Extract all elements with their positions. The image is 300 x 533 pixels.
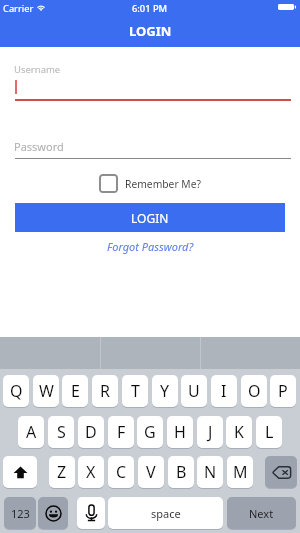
button[interactable]: I (211, 375, 237, 407)
staticText: W (39, 380, 54, 402)
staticText: 6:01 PM (132, 2, 168, 15)
staticText: Remember Me? (125, 177, 201, 191)
button[interactable]: O (241, 375, 267, 407)
staticText: Password (14, 139, 64, 154)
staticText: K (234, 421, 244, 443)
button[interactable]: M (227, 456, 253, 488)
staticText: Username (14, 63, 61, 76)
staticText: M (233, 461, 248, 483)
staticText: Q (10, 380, 23, 402)
staticText: LOGIN (129, 22, 172, 40)
staticText: H (174, 421, 186, 443)
staticText: U (188, 380, 200, 402)
button[interactable]: A (18, 416, 44, 448)
button[interactable]: Forgot Password? (107, 239, 194, 254)
staticText: X (86, 461, 96, 483)
button[interactable]: W (33, 375, 59, 407)
staticText: Carrier (3, 2, 34, 15)
button[interactable]: H (167, 416, 193, 448)
button[interactable]: Dictation (77, 497, 105, 529)
button[interactable]: S (48, 416, 74, 448)
button[interactable]: E (62, 375, 88, 407)
button[interactable]: Z (49, 456, 75, 488)
staticText: E (71, 380, 80, 402)
staticText: R (100, 380, 110, 402)
staticText: F (117, 421, 126, 443)
button[interactable]: T (122, 375, 148, 407)
button[interactable]: V (138, 456, 164, 488)
button[interactable]: Remember Me? (99, 174, 201, 193)
staticText: 123 (11, 506, 30, 521)
staticText: J (208, 421, 213, 443)
staticText: D (85, 421, 97, 443)
button[interactable]: Emoji (38, 497, 68, 529)
staticText: C (116, 461, 127, 483)
staticText: P (278, 380, 288, 402)
staticText: N (204, 461, 217, 483)
button[interactable]: R (92, 375, 118, 407)
staticText: S (57, 421, 66, 443)
button[interactable]: J (197, 416, 223, 448)
button[interactable]: N (197, 456, 223, 488)
staticText: space (151, 506, 181, 521)
button[interactable]: G (137, 416, 163, 448)
button[interactable]: Next (227, 497, 296, 529)
button[interactable]: X (78, 456, 104, 488)
staticText: Next (249, 506, 274, 521)
button[interactable]: Q (3, 375, 29, 407)
button[interactable]: Backspace (265, 456, 297, 488)
button[interactable]: Y (152, 375, 178, 407)
staticText: V (146, 461, 156, 483)
button[interactable]: K (226, 416, 252, 448)
staticText: G (144, 421, 156, 443)
button[interactable]: B (168, 456, 194, 488)
button[interactable]: F (108, 416, 134, 448)
button[interactable]: 123 (4, 497, 36, 529)
staticText: B (176, 461, 187, 483)
button[interactable]: Shift (3, 456, 37, 488)
button[interactable]: U (181, 375, 207, 407)
button[interactable]: L (256, 416, 282, 448)
staticText: Z (57, 461, 67, 483)
staticText: Y (160, 380, 170, 402)
button[interactable]: C (108, 456, 134, 488)
button[interactable]: P (270, 375, 296, 407)
staticText: I (221, 380, 227, 402)
button[interactable]: space (108, 497, 223, 529)
staticText: T (131, 380, 140, 402)
staticText: L (265, 421, 274, 443)
staticText: LOGIN (131, 210, 169, 226)
staticText: O (248, 380, 261, 402)
button[interactable]: D (78, 416, 104, 448)
staticText: A (26, 421, 37, 443)
button[interactable]: LOGIN (15, 203, 285, 232)
